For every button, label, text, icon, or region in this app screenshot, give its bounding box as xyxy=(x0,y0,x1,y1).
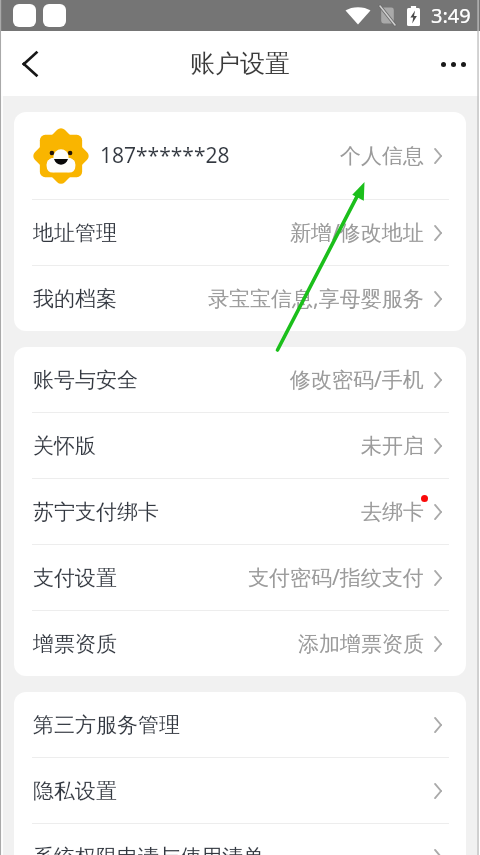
button[interactable]: Back xyxy=(0,34,60,94)
staticText: 系统权限申请与使用清单 xyxy=(33,844,264,855)
staticText: 账号与安全 xyxy=(33,367,138,393)
button[interactable]: 支付设置 xyxy=(14,545,466,610)
staticText: 账户设置 xyxy=(190,48,290,79)
staticText: 修改密码/手机 xyxy=(290,365,424,394)
staticText: 新增/修改地址 xyxy=(290,218,424,247)
button[interactable]: 187******28 xyxy=(14,112,466,199)
staticText: 增票资质 xyxy=(33,631,117,657)
button[interactable]: 第三方服务管理 xyxy=(14,692,466,757)
staticText: 第三方服务管理 xyxy=(33,712,180,738)
staticText: 187******28 xyxy=(100,141,230,170)
staticText: 3:49 xyxy=(431,2,471,29)
staticText: 录宝宝信息,享母婴服务 xyxy=(208,284,424,313)
button[interactable]: 隐私设置 xyxy=(14,758,466,823)
staticText: 支付设置 xyxy=(33,565,117,591)
button[interactable]: 账号与安全 xyxy=(14,347,466,412)
button[interactable]: More options xyxy=(426,36,480,92)
button[interactable]: 关怀版 xyxy=(14,413,466,478)
staticText: 苏宁支付绑卡 xyxy=(33,499,159,525)
staticText: 去绑卡 xyxy=(361,499,424,525)
staticText: 添加增票资质 xyxy=(298,631,424,657)
button[interactable]: 地址管理 xyxy=(14,200,466,265)
staticText: 地址管理 xyxy=(33,220,117,246)
button[interactable]: 系统权限申请与使用清单 xyxy=(14,824,466,855)
button[interactable]: 增票资质 xyxy=(14,611,466,676)
staticText: 未开启 xyxy=(361,433,424,459)
staticText: 隐私设置 xyxy=(33,778,117,804)
staticText: 支付密码/指纹支付 xyxy=(248,563,424,592)
button[interactable]: 苏宁支付绑卡 xyxy=(14,479,466,544)
staticText: 关怀版 xyxy=(33,433,96,459)
staticText: 我的档案 xyxy=(33,286,117,312)
button[interactable]: 我的档案 xyxy=(14,266,466,331)
staticText: 个人信息 xyxy=(340,143,424,169)
